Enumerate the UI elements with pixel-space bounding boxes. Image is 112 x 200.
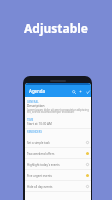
staticText: Lorem ipsum dolor sit amet consectetur a… [27,108,89,114]
button[interactable]: Done [85,89,90,94]
staticText: Agenda [29,88,46,94]
staticText: TIME [27,118,34,122]
staticText: Highlight today's events [27,163,86,167]
staticText: Description [27,104,45,108]
button[interactable]: Set a simple task [25,137,91,148]
button[interactable]: Hide all day events [25,181,91,192]
staticText: REMINDERS [27,130,42,134]
button[interactable]: Highlight today's events [25,159,91,170]
staticText: Five urgent events [27,174,86,178]
staticText: Set a simple task [27,141,86,145]
staticText: Two weekend offers [27,152,86,156]
button[interactable]: Add event [78,89,83,94]
staticText: GENERAL [27,100,39,104]
staticText: Start at 10:30 AM [27,122,52,126]
button[interactable]: Search [71,89,76,94]
button[interactable]: Two weekend offers [25,148,91,159]
staticText: Hide all day events [27,185,86,189]
staticText: Adjustable [24,20,89,36]
button[interactable]: Five urgent events [25,170,91,181]
